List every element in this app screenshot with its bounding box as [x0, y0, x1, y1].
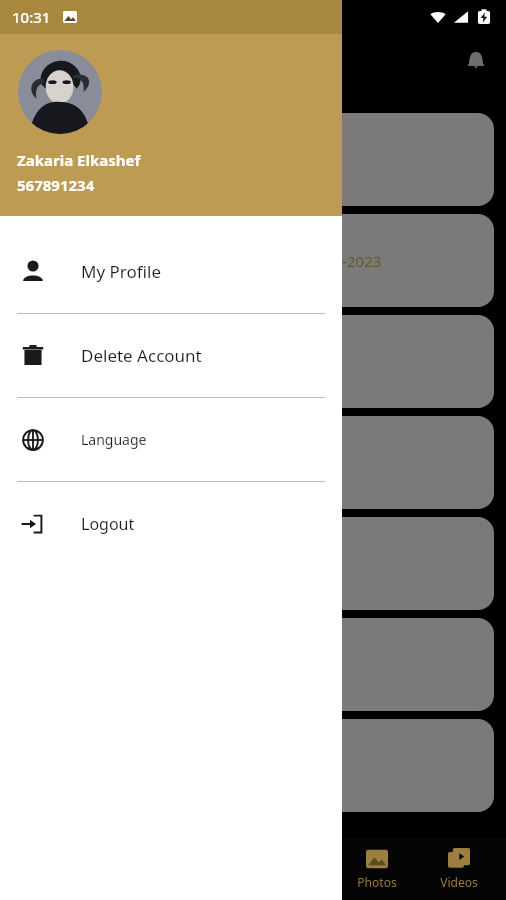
button[interactable]: My Profile: [0, 230, 342, 313]
button[interactable]: [13, 618, 494, 711]
button[interactable]: Delete Account: [0, 314, 342, 397]
staticText: My Profile: [81, 260, 161, 283]
staticText: Zakaria Elkashef: [17, 150, 141, 170]
staticText: Logout: [81, 513, 135, 535]
button[interactable]: [13, 517, 494, 610]
staticText: 567891234: [17, 175, 95, 195]
button[interactable]: [13, 315, 494, 408]
staticText: Photos: [357, 874, 397, 890]
staticText: Videos: [440, 874, 478, 890]
button[interactable]: [13, 416, 494, 509]
button[interactable]: Logout: [0, 482, 342, 565]
button[interactable]: Notifications: [460, 44, 492, 76]
button[interactable]: 12-06-2023: [13, 214, 494, 307]
button[interactable]: Language: [0, 398, 342, 481]
staticText: Delete Account: [81, 344, 202, 367]
button[interactable]: Videos: [418, 838, 500, 900]
button[interactable]: close: [13, 113, 494, 206]
staticText: 10:31: [12, 7, 51, 27]
button[interactable]: [13, 719, 494, 812]
staticText: Language: [81, 430, 147, 449]
staticText: 12-06-2023: [303, 251, 382, 271]
button[interactable]: Photos: [336, 838, 418, 900]
